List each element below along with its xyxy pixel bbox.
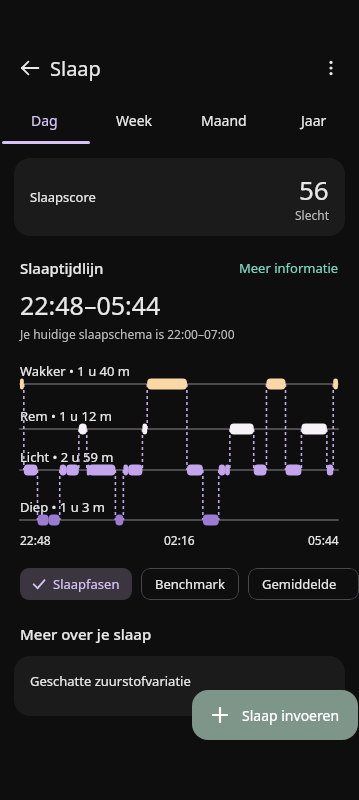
button[interactable]: Jaar bbox=[269, 96, 359, 144]
staticText: Slaapfasen bbox=[53, 575, 120, 593]
staticText: Dag bbox=[31, 111, 58, 130]
button[interactable]: Slaap invoeren bbox=[192, 690, 358, 740]
staticText: Slecht bbox=[295, 207, 329, 223]
staticText: Slaap invoeren bbox=[242, 706, 340, 725]
staticText: 02:16 bbox=[164, 532, 195, 548]
staticText: Maand bbox=[201, 111, 247, 130]
button[interactable]: More options bbox=[311, 48, 351, 88]
staticText: Meer over je slaap bbox=[20, 624, 152, 644]
staticText: 05:44 bbox=[308, 532, 339, 548]
button[interactable]: Meer informatie bbox=[239, 259, 339, 277]
staticText: Slaap bbox=[50, 55, 101, 82]
button[interactable]: Gemiddelde over 3 bbox=[248, 568, 359, 600]
button[interactable]: Geschatte zuurstofvariatie bbox=[14, 656, 345, 716]
staticText: 56 bbox=[299, 172, 329, 207]
button[interactable]: Slaapscore bbox=[14, 158, 345, 236]
staticText: 22:48 bbox=[20, 532, 51, 548]
button[interactable]: Week bbox=[89, 96, 179, 144]
staticText: Week bbox=[116, 111, 153, 130]
staticText: Licht • 2 u 59 m bbox=[20, 448, 114, 466]
button[interactable]: Benchmark bbox=[141, 568, 239, 600]
staticText: Wakker • 1 u 40 m bbox=[20, 362, 130, 380]
staticText: Diep • 1 u 3 m bbox=[20, 498, 106, 516]
button[interactable]: Maand bbox=[179, 96, 269, 144]
button[interactable]: Back bbox=[10, 48, 50, 88]
staticText: Meer informatie bbox=[239, 259, 339, 277]
staticText: Gemiddelde over 3 bbox=[262, 575, 345, 593]
staticText: Geschatte zuurstofvariatie bbox=[30, 672, 191, 690]
staticText: Je huidige slaapschema is 22:00–07:00 bbox=[20, 326, 235, 342]
button[interactable]: Dag bbox=[0, 96, 89, 144]
staticText: Jaar bbox=[301, 111, 327, 130]
button[interactable]: Slaapfasen bbox=[20, 568, 132, 600]
staticText: Rem • 1 u 12 m bbox=[20, 407, 112, 425]
staticText: Benchmark bbox=[155, 575, 225, 593]
staticText: 22:48–05:44 bbox=[20, 288, 161, 322]
staticText: Slaaptijdlijn bbox=[20, 258, 104, 278]
staticText: Slaapscore bbox=[30, 188, 96, 206]
